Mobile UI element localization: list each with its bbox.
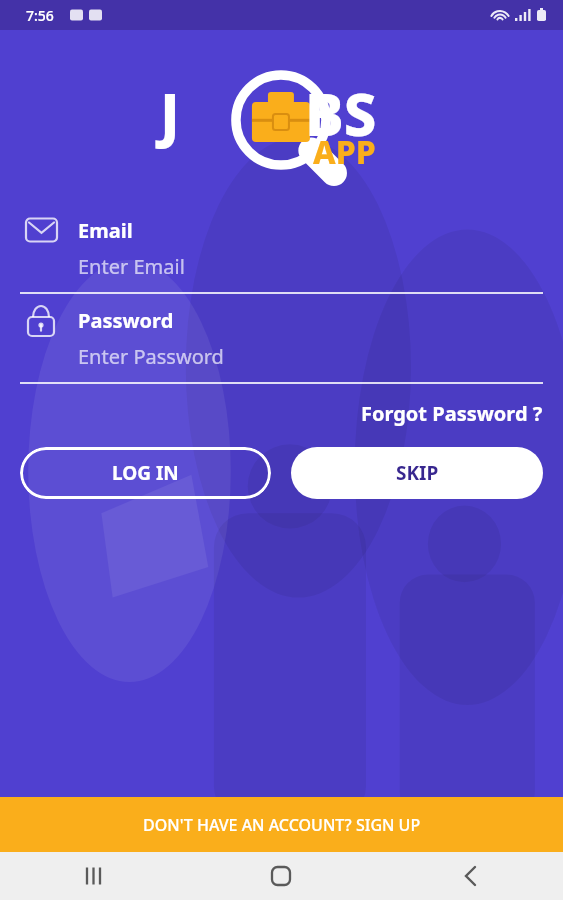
- staticText: 7:56: [26, 6, 54, 25]
- button[interactable]: Forgot Password ?: [361, 396, 563, 431]
- staticText: Enter Email: [78, 253, 185, 280]
- button[interactable]: Recent apps: [0, 852, 187, 900]
- button[interactable]: LOG IN: [20, 447, 271, 499]
- staticText: Enter Password: [78, 343, 224, 370]
- button[interactable]: SKIP: [291, 447, 543, 499]
- staticText: Password: [78, 307, 174, 334]
- button[interactable]: Password: [0, 306, 563, 384]
- staticText: LOG IN: [112, 460, 179, 486]
- button[interactable]: Email: [0, 216, 563, 294]
- staticText: Forgot Password ?: [361, 400, 543, 427]
- staticText: BS: [305, 74, 377, 153]
- staticText: J: [160, 74, 180, 153]
- staticText: SKIP: [396, 460, 439, 486]
- staticText: DON'T HAVE AN ACCOUNT? SIGN UP: [143, 814, 421, 836]
- button[interactable]: Home: [187, 852, 375, 900]
- staticText: APP: [313, 130, 376, 174]
- button[interactable]: DON'T HAVE AN ACCOUNT? SIGN UP: [0, 797, 563, 852]
- button[interactable]: Back: [375, 852, 563, 900]
- staticText: Email: [78, 217, 133, 244]
